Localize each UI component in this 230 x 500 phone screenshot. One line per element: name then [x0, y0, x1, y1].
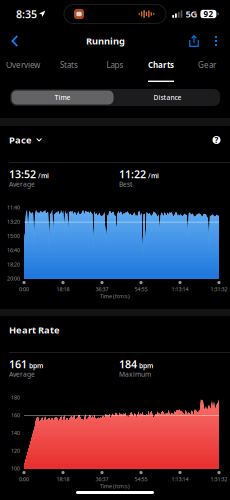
staticText: 120 [11, 447, 20, 454]
staticText: Time (h:m:s) [100, 293, 130, 300]
staticText: 13:20 [7, 218, 20, 225]
button[interactable]: Stats [46, 59, 92, 82]
staticText: ? [214, 135, 218, 145]
staticText: Laps [106, 60, 123, 70]
button[interactable]: Charts [138, 59, 184, 82]
staticText: 18:18 [56, 476, 69, 483]
button[interactable]: Back [0, 29, 28, 53]
button[interactable]: Distance [115, 89, 220, 106]
staticText: 1:31:32 [210, 286, 227, 293]
staticText: 0:00 [19, 286, 29, 293]
staticText: Running [86, 35, 125, 47]
button[interactable]: Overview [0, 59, 46, 82]
staticText: Heart Rate [9, 324, 60, 336]
staticText: 1:13:14 [171, 286, 188, 293]
staticText: 92 [203, 9, 213, 19]
staticText: 15:00 [7, 232, 20, 239]
staticText: 184 [119, 357, 137, 371]
staticText: Charts [148, 60, 174, 70]
staticText: 100 [11, 465, 20, 472]
staticText: Average [9, 370, 35, 379]
button[interactable]: Gear [184, 59, 230, 82]
staticText: 36:37 [95, 286, 108, 293]
staticText: 36:37 [95, 476, 108, 483]
staticText: /mi [148, 171, 159, 180]
button[interactable]: More options [205, 30, 230, 52]
button[interactable]: Time [10, 89, 115, 106]
button[interactable]: Laps [92, 59, 138, 82]
staticText: Overview [6, 60, 40, 70]
staticText: Time [54, 93, 70, 102]
staticText: 0:00 [19, 476, 29, 483]
staticText: 160 [11, 412, 20, 419]
staticText: Time (h:m:s) [100, 483, 130, 490]
staticText: Gear [198, 60, 216, 70]
staticText: Maximum [119, 370, 151, 379]
staticText: 180 [11, 394, 20, 401]
staticText: Distance [153, 93, 181, 102]
staticText: 18:18 [56, 286, 69, 293]
staticText: 140 [11, 429, 20, 437]
staticText: 1:31:32 [210, 476, 227, 483]
staticText: 1:13:14 [171, 476, 188, 483]
staticText: Average [9, 180, 35, 189]
staticText: 5G [185, 8, 197, 20]
staticText: bpm [29, 361, 43, 370]
staticText: Stats [60, 60, 78, 70]
button[interactable]: About this chart [212, 135, 221, 144]
staticText: 11:22 [119, 167, 146, 181]
staticText: 11:40 [7, 204, 20, 211]
staticText: /mi [38, 171, 49, 180]
staticText: bpm [139, 361, 153, 370]
staticText: Pace [9, 134, 32, 146]
staticText: 54:55 [134, 286, 147, 293]
staticText: 54:55 [134, 476, 147, 483]
staticText: 8:35 [16, 7, 37, 21]
staticText: 16:40 [7, 247, 20, 254]
staticText: 18:20 [7, 261, 20, 268]
staticText: 13:52 [9, 167, 36, 181]
staticText: Best [119, 180, 132, 189]
staticText: 20:00 [7, 275, 20, 282]
button[interactable]: Share [183, 30, 205, 52]
staticText: 161 [9, 357, 27, 371]
